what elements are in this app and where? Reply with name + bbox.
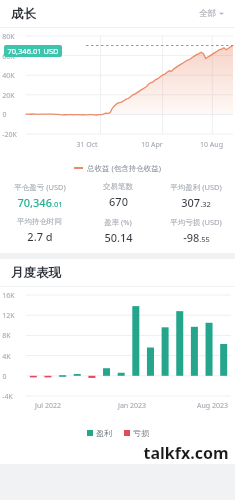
staticText: 8K — [2, 331, 11, 341]
staticText: 总收益 (包含持仓收益) — [87, 163, 161, 173]
staticText: 交易笔数 — [103, 182, 133, 191]
staticText: Jul 2022 — [35, 401, 61, 411]
staticText: 2.7 d — [27, 229, 53, 244]
staticText: Aug 2023 — [197, 401, 228, 411]
staticText: -4K — [2, 392, 13, 402]
staticText: 平均亏损 (USD) — [170, 217, 222, 227]
button[interactable]: 平均亏损 (USD) — [157, 217, 235, 245]
staticText: Jan 2023 — [118, 401, 146, 411]
staticText: 50.14 — [104, 230, 133, 245]
staticText: 16K — [2, 291, 15, 301]
staticText: 670 — [109, 194, 128, 209]
button[interactable]: 平仓盈亏 (USD) — [0, 182, 79, 210]
staticText: -98.55 — [183, 230, 210, 245]
button[interactable]: 平均盈利 (USD) — [157, 182, 235, 210]
staticText: 4K — [2, 352, 11, 362]
staticText: -20K — [2, 130, 17, 140]
staticText: 盈利 — [96, 428, 112, 438]
button[interactable]: 全部 — [197, 5, 226, 22]
staticText: 月度表现 — [11, 265, 61, 281]
staticText: 307.32 — [181, 195, 211, 210]
button[interactable]: 平均持仓时间 — [0, 217, 79, 244]
staticText: 平仓盈亏 (USD) — [14, 182, 66, 192]
staticText: 70,346.01 USD — [7, 46, 59, 56]
staticText: 成长 — [11, 6, 36, 22]
staticText: talkfx.com — [143, 442, 229, 464]
staticText: 平均持仓时间 — [17, 217, 62, 226]
staticText: 全部 — [199, 8, 216, 19]
staticText: 12K — [2, 311, 15, 321]
staticText: 10 Apr — [141, 140, 163, 150]
staticText: 70,346.01 — [17, 195, 63, 210]
button[interactable]: 盈率 (%) — [79, 217, 157, 245]
staticText: 60K — [2, 52, 15, 62]
staticText: 0 — [2, 372, 7, 382]
staticText: 10 Aug — [200, 140, 223, 150]
staticText: 0 — [2, 110, 7, 120]
staticText: 40K — [2, 71, 15, 81]
staticText: 31 Oct — [76, 140, 98, 150]
staticText: 亏损 — [133, 428, 149, 438]
staticText: 平均盈利 (USD) — [170, 182, 222, 192]
staticText: 20K — [2, 91, 15, 101]
staticText: 80K — [2, 32, 15, 42]
staticText: 盈率 (%) — [104, 217, 132, 227]
button[interactable]: 交易笔数 — [79, 182, 157, 209]
